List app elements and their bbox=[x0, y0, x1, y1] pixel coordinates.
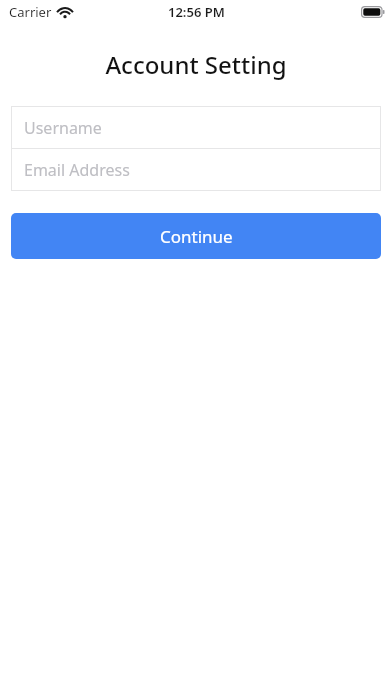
other: Battery full bbox=[361, 6, 385, 18]
button[interactable]: Username bbox=[11, 106, 381, 149]
staticText: 12:56 PM bbox=[168, 3, 225, 21]
staticText: Carrier bbox=[9, 3, 52, 21]
staticText: Continue bbox=[160, 225, 233, 248]
staticText: Username bbox=[24, 117, 102, 139]
staticText: Email Address bbox=[24, 159, 130, 181]
button[interactable]: Email Address bbox=[11, 149, 381, 191]
other: Wi-Fi bbox=[58, 7, 72, 18]
button[interactable]: Continue bbox=[11, 213, 381, 259]
staticText: Account Setting bbox=[0, 48, 392, 81]
